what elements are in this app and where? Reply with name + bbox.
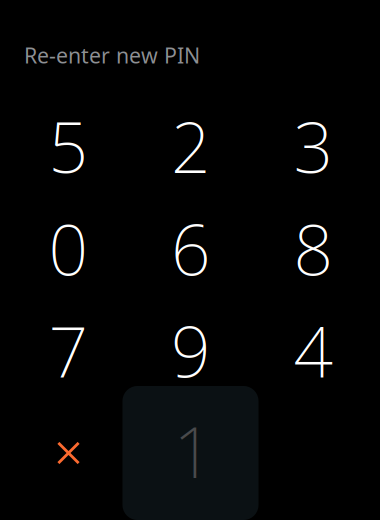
button[interactable]: 4 (254, 300, 372, 400)
button[interactable]: 9 (132, 300, 250, 400)
staticText: 1 (173, 405, 213, 497)
staticText: 4 (293, 304, 333, 397)
button[interactable]: Cancel (9, 401, 127, 501)
staticText: 2 (171, 100, 211, 192)
button[interactable]: 7 (9, 300, 127, 400)
staticText: 0 (48, 202, 88, 295)
button[interactable]: 0 (9, 198, 127, 298)
staticText: 5 (48, 100, 88, 192)
button[interactable]: 1 (122, 386, 258, 520)
staticText: 7 (48, 304, 88, 397)
button[interactable]: 2 (132, 96, 250, 196)
staticText: 8 (293, 202, 333, 295)
button[interactable]: 6 (132, 198, 250, 298)
staticText: 6 (171, 202, 211, 295)
staticText: 3 (293, 100, 333, 192)
staticText: 9 (171, 304, 211, 397)
button[interactable]: 3 (254, 96, 372, 196)
staticText: Re-enter new PIN (24, 41, 200, 69)
button[interactable]: 5 (9, 96, 127, 196)
button[interactable]: 8 (254, 198, 372, 298)
